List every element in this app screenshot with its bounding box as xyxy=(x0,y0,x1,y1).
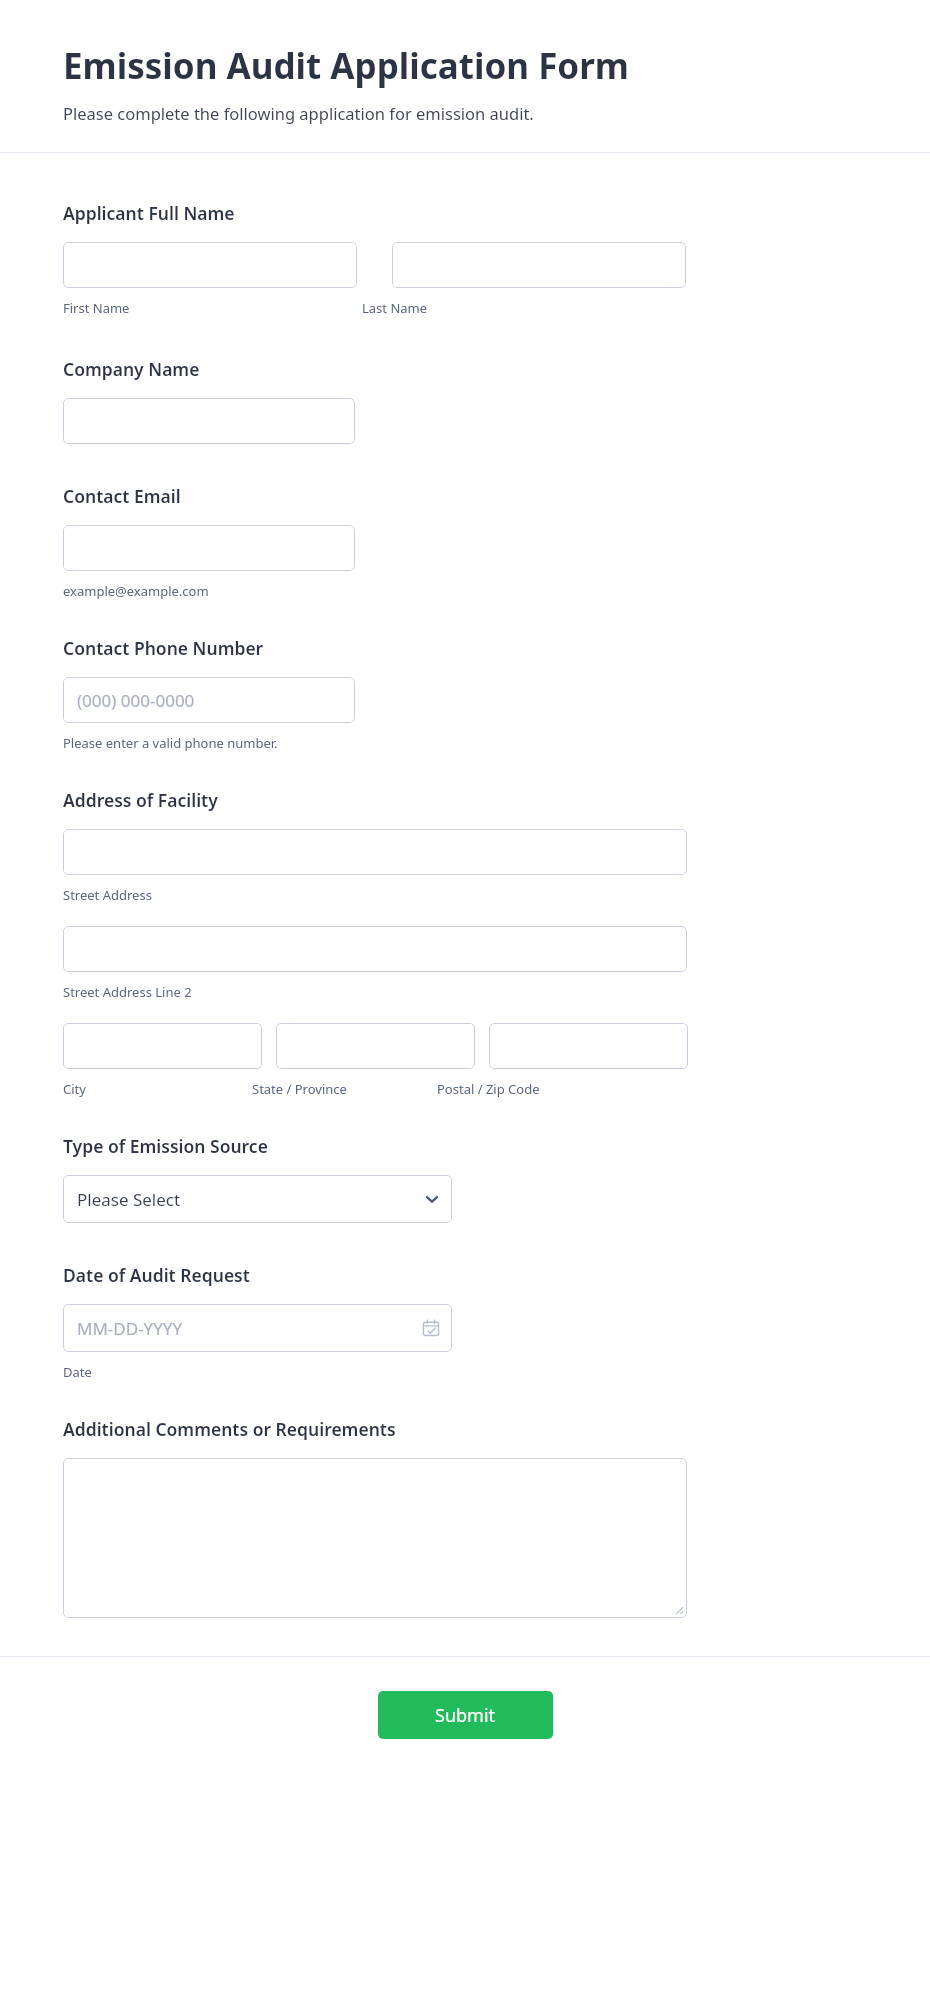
button[interactable]: Contact Email xyxy=(63,525,355,571)
staticText: Postal / Zip Code xyxy=(437,1080,540,1098)
staticText: City xyxy=(63,1080,86,1098)
staticText: Emission Audit Application Form xyxy=(63,42,629,90)
button[interactable]: First Name xyxy=(63,242,357,288)
staticText: Additional Comments or Requirements xyxy=(63,1417,396,1441)
staticText: Last Name xyxy=(362,299,428,317)
staticText: Type of Emission Source xyxy=(63,1134,268,1158)
staticText: Contact Email xyxy=(63,484,181,508)
staticText: Applicant Full Name xyxy=(63,201,235,225)
staticText: Street Address xyxy=(63,886,152,904)
staticText: (000) 000-0000 xyxy=(77,689,195,712)
button[interactable]: Last Name xyxy=(392,242,686,288)
staticText: Street Address Line 2 xyxy=(63,983,192,1001)
staticText: Company Name xyxy=(63,357,200,381)
button[interactable]: Submit xyxy=(378,1691,553,1739)
staticText: Please complete the following applicatio… xyxy=(63,102,534,124)
staticText: Submit xyxy=(435,1703,496,1728)
staticText: MM-DD-YYYY xyxy=(77,1317,183,1340)
staticText: State / Province xyxy=(252,1080,347,1098)
staticText: Please Select xyxy=(77,1188,181,1211)
button[interactable]: Postal / Zip Code xyxy=(489,1023,688,1069)
button[interactable]: Type of Emission Source xyxy=(63,1175,452,1223)
button[interactable]: Contact Phone Number xyxy=(63,677,355,723)
button[interactable]: Company Name xyxy=(63,398,355,444)
staticText: Date xyxy=(63,1363,92,1381)
button[interactable]: Date of Audit Request xyxy=(63,1304,452,1352)
button[interactable]: Additional Comments or Requirements xyxy=(63,1458,687,1618)
staticText: Please enter a valid phone number. xyxy=(63,734,278,752)
button[interactable]: Street Address xyxy=(63,829,687,875)
staticText: Contact Phone Number xyxy=(63,636,264,660)
staticText: example@example.com xyxy=(63,582,209,600)
staticText: Date of Audit Request xyxy=(63,1263,250,1287)
staticText: Address of Facility xyxy=(63,788,218,812)
button[interactable]: Street Address Line 2 xyxy=(63,926,687,972)
button[interactable]: State / Province xyxy=(276,1023,475,1069)
button[interactable]: City xyxy=(63,1023,262,1069)
staticText: First Name xyxy=(63,299,130,317)
